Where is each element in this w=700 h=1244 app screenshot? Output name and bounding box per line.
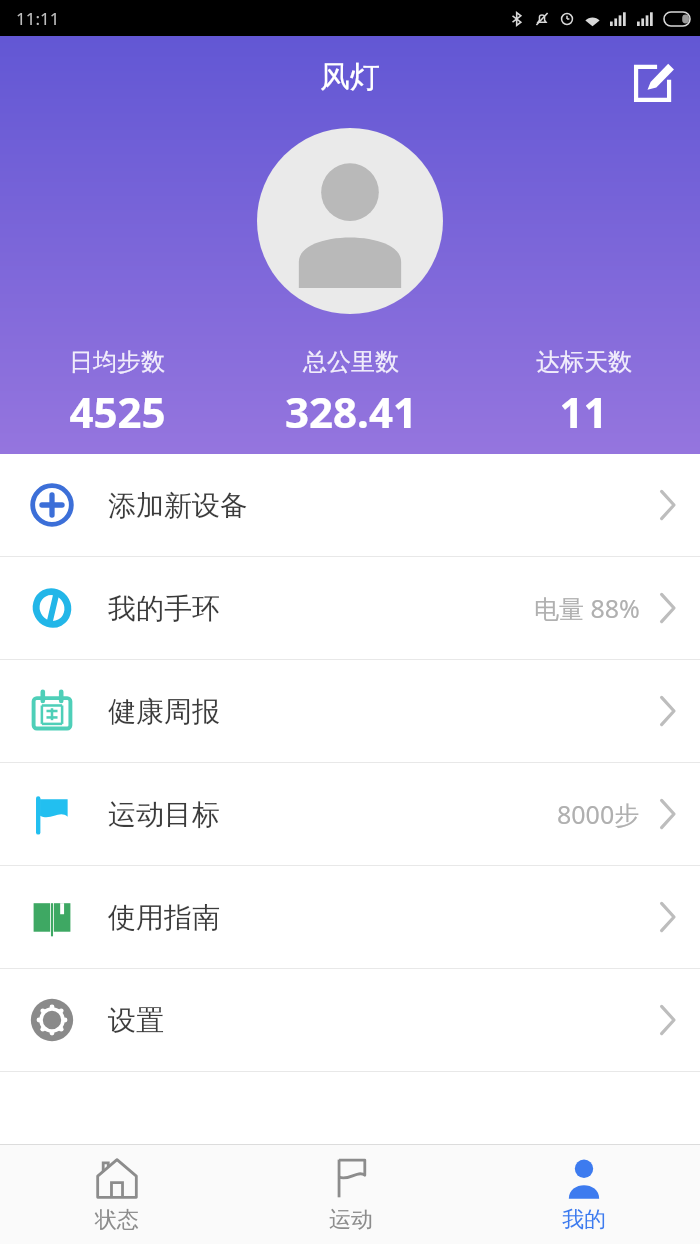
staticText: 设置 [108,1003,164,1038]
button[interactable]: 添加新设备 [0,454,700,556]
staticText: 电量 88% [534,591,640,625]
staticText: 8000步 [557,797,640,831]
button[interactable]: 我的 [467,1145,700,1244]
staticText: 使用指南 [108,900,220,935]
staticText: 我的 [562,1206,606,1234]
button[interactable]: 我的手环 [0,557,700,659]
button[interactable]: 健康周报 [0,660,700,762]
staticText: 11 [559,383,608,440]
staticText: 达标天数 [536,347,632,377]
button[interactable]: 设置 [0,969,700,1071]
button[interactable]: Edit [626,52,684,110]
staticText: 日均步数 [69,347,165,377]
button[interactable]: 状态 [0,1145,234,1244]
button[interactable]: 使用指南 [0,866,700,968]
button[interactable]: 运动 [234,1145,467,1244]
button[interactable]: 运动目标 [0,763,700,865]
staticText: 运动 [329,1206,373,1234]
staticText: 状态 [95,1206,139,1234]
staticText: 运动目标 [108,797,220,832]
staticText: 添加新设备 [108,488,248,523]
staticText: 健康周报 [108,694,220,729]
staticText: 总公里数 [303,347,399,377]
staticText: 4525 [69,383,166,440]
staticText: 风灯 [320,58,380,96]
staticText: 328.41 [285,383,417,440]
staticText: 11:11 [16,7,60,30]
staticText: 我的手环 [108,591,220,626]
